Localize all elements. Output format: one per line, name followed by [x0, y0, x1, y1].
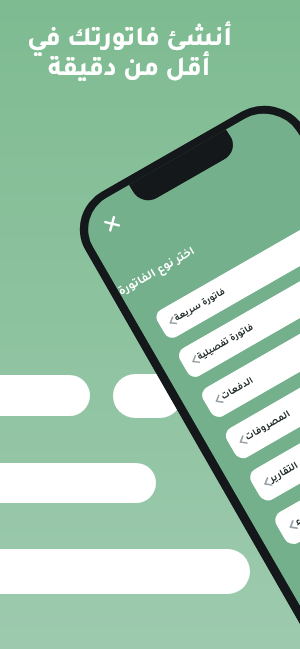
staticText: اختر نوع الفاتورة: [117, 204, 271, 299]
button[interactable]: الدفعات: [198, 288, 300, 421]
staticText: أقل من دقيقة: [48, 58, 210, 85]
staticText: الدفعات: [219, 316, 300, 402]
staticText: فاتورة تفصيلية: [196, 278, 300, 362]
button[interactable]: فاتورة تفصيلية: [175, 250, 300, 380]
button[interactable]: المصروفات: [222, 327, 300, 462]
staticText: أنشئ فاتورتك في: [27, 28, 232, 55]
staticText: المصروفات: [243, 356, 300, 443]
button[interactable]: فاتورة سريعة: [153, 213, 300, 341]
button[interactable]: العملاء: [271, 408, 300, 548]
staticText: التقارير: [268, 397, 300, 485]
button[interactable]: Close: [102, 214, 122, 233]
button[interactable]: التقارير: [246, 367, 300, 504]
staticText: العملاء: [294, 439, 300, 528]
staticText: فاتورة سريعة: [173, 240, 300, 324]
